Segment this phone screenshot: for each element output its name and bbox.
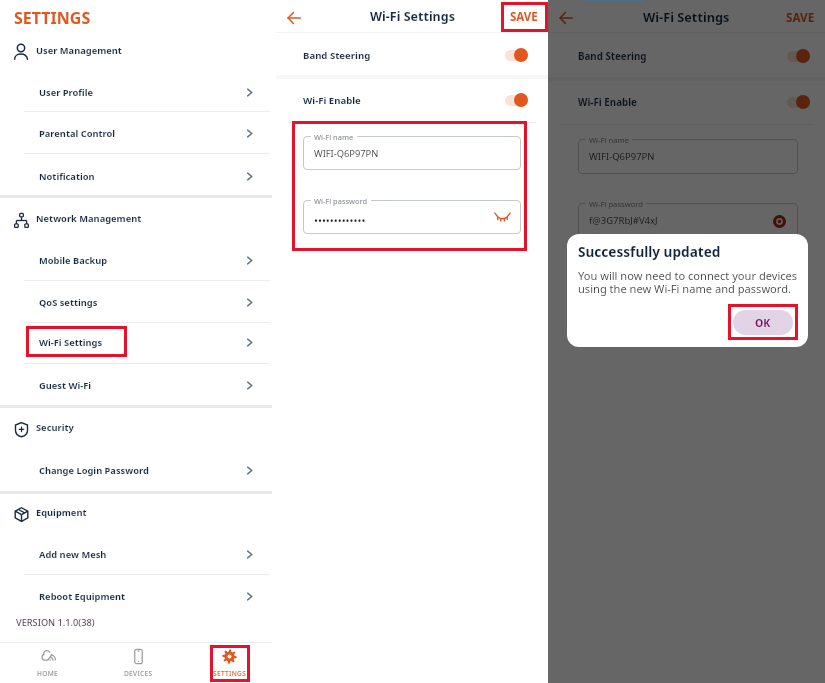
button[interactable]: Add new Mesh xyxy=(0,534,272,574)
button[interactable]: QoS settings xyxy=(0,282,272,322)
staticText: Successfully updated xyxy=(578,242,721,261)
staticText: QoS settings xyxy=(39,296,98,309)
button[interactable]: Notification xyxy=(0,156,272,196)
button[interactable]: OK xyxy=(733,310,793,335)
staticText: Equipment xyxy=(36,506,87,519)
staticText: DEVICES xyxy=(124,669,153,678)
staticText: SAVE xyxy=(510,9,538,25)
staticText: Wi-Fi Settings xyxy=(370,8,455,25)
button[interactable]: Mobile Backup xyxy=(0,240,272,280)
button[interactable]: Wi-Fi Enable xyxy=(548,80,825,124)
other: Settings xyxy=(222,649,237,664)
staticText: Wi-Fi name xyxy=(589,135,629,145)
button[interactable]: Show password xyxy=(494,209,510,225)
staticText: f@3G7RbJ#V4xJ xyxy=(589,214,658,227)
staticText: You will now need to connect your device… xyxy=(578,268,798,296)
staticText: Wi-Fi Settings xyxy=(39,336,103,349)
button[interactable]: Wi-Fi name xyxy=(578,139,798,174)
button[interactable]: Guest Wi-Fi xyxy=(0,365,272,405)
button[interactable]: SAVE xyxy=(504,6,548,29)
button[interactable]: Parental Control xyxy=(0,113,272,153)
button[interactable]: Band Steering xyxy=(276,33,548,77)
button[interactable]: Back xyxy=(282,6,306,30)
staticText: User Profile xyxy=(39,86,94,99)
button[interactable]: Change Login Password xyxy=(0,450,272,490)
staticText: Wi-Fi Enable xyxy=(578,96,637,109)
staticText: Band Steering xyxy=(578,50,647,63)
button[interactable]: Show password xyxy=(771,213,787,229)
button[interactable]: Devices xyxy=(93,643,184,683)
staticText: Network Management xyxy=(36,212,142,225)
button[interactable]: Home xyxy=(3,643,93,683)
staticText: HOME xyxy=(37,669,59,678)
staticText: Guest Wi-Fi xyxy=(39,379,92,392)
staticText: Wi-Fi Settings xyxy=(643,8,730,25)
staticText: Wi-Fi Enable xyxy=(303,94,361,107)
button[interactable]: Wi-Fi password xyxy=(303,200,521,234)
button[interactable]: Wi-Fi name xyxy=(303,136,521,170)
button[interactable]: Wi-Fi Settings xyxy=(0,322,272,362)
button[interactable]: SAVE xyxy=(780,6,825,29)
button[interactable]: Reboot Equipment xyxy=(0,576,272,616)
staticText: Wi-Fi name xyxy=(314,132,354,142)
button[interactable]: Wi-Fi Enable xyxy=(276,78,548,122)
staticText: Parental Control xyxy=(39,127,116,140)
staticText: Reboot Equipment xyxy=(39,590,126,603)
staticText: WIFI-Q6P97PN xyxy=(314,147,379,160)
staticText: Change Login Password xyxy=(39,464,149,477)
staticText: WIFI-Q6P97PN xyxy=(589,150,655,163)
staticText: VERSION 1.1.0(38) xyxy=(16,616,95,629)
other: Home xyxy=(41,649,56,664)
staticText: OK xyxy=(755,316,771,330)
button[interactable]: User Profile xyxy=(0,72,272,112)
button[interactable]: Back xyxy=(554,6,578,30)
staticText: Mobile Backup xyxy=(39,254,108,267)
other: Devices xyxy=(131,649,146,664)
staticText: Notification xyxy=(39,170,95,183)
button[interactable]: Settings xyxy=(184,643,275,683)
staticText: Wi-Fi password xyxy=(314,196,368,206)
button[interactable]: Wi-Fi password xyxy=(578,203,798,238)
staticText: SETTINGS xyxy=(213,669,247,678)
staticText: Security xyxy=(36,421,74,434)
staticText: User Management xyxy=(36,44,122,57)
staticText: SETTINGS xyxy=(14,7,91,29)
staticText: Band Steering xyxy=(303,49,371,62)
staticText: SAVE xyxy=(786,9,815,25)
staticText: ••••••••••••• xyxy=(314,214,366,228)
staticText: Wi-Fi password xyxy=(589,199,643,209)
staticText: Add new Mesh xyxy=(39,548,107,561)
button[interactable]: Band Steering xyxy=(548,34,825,78)
